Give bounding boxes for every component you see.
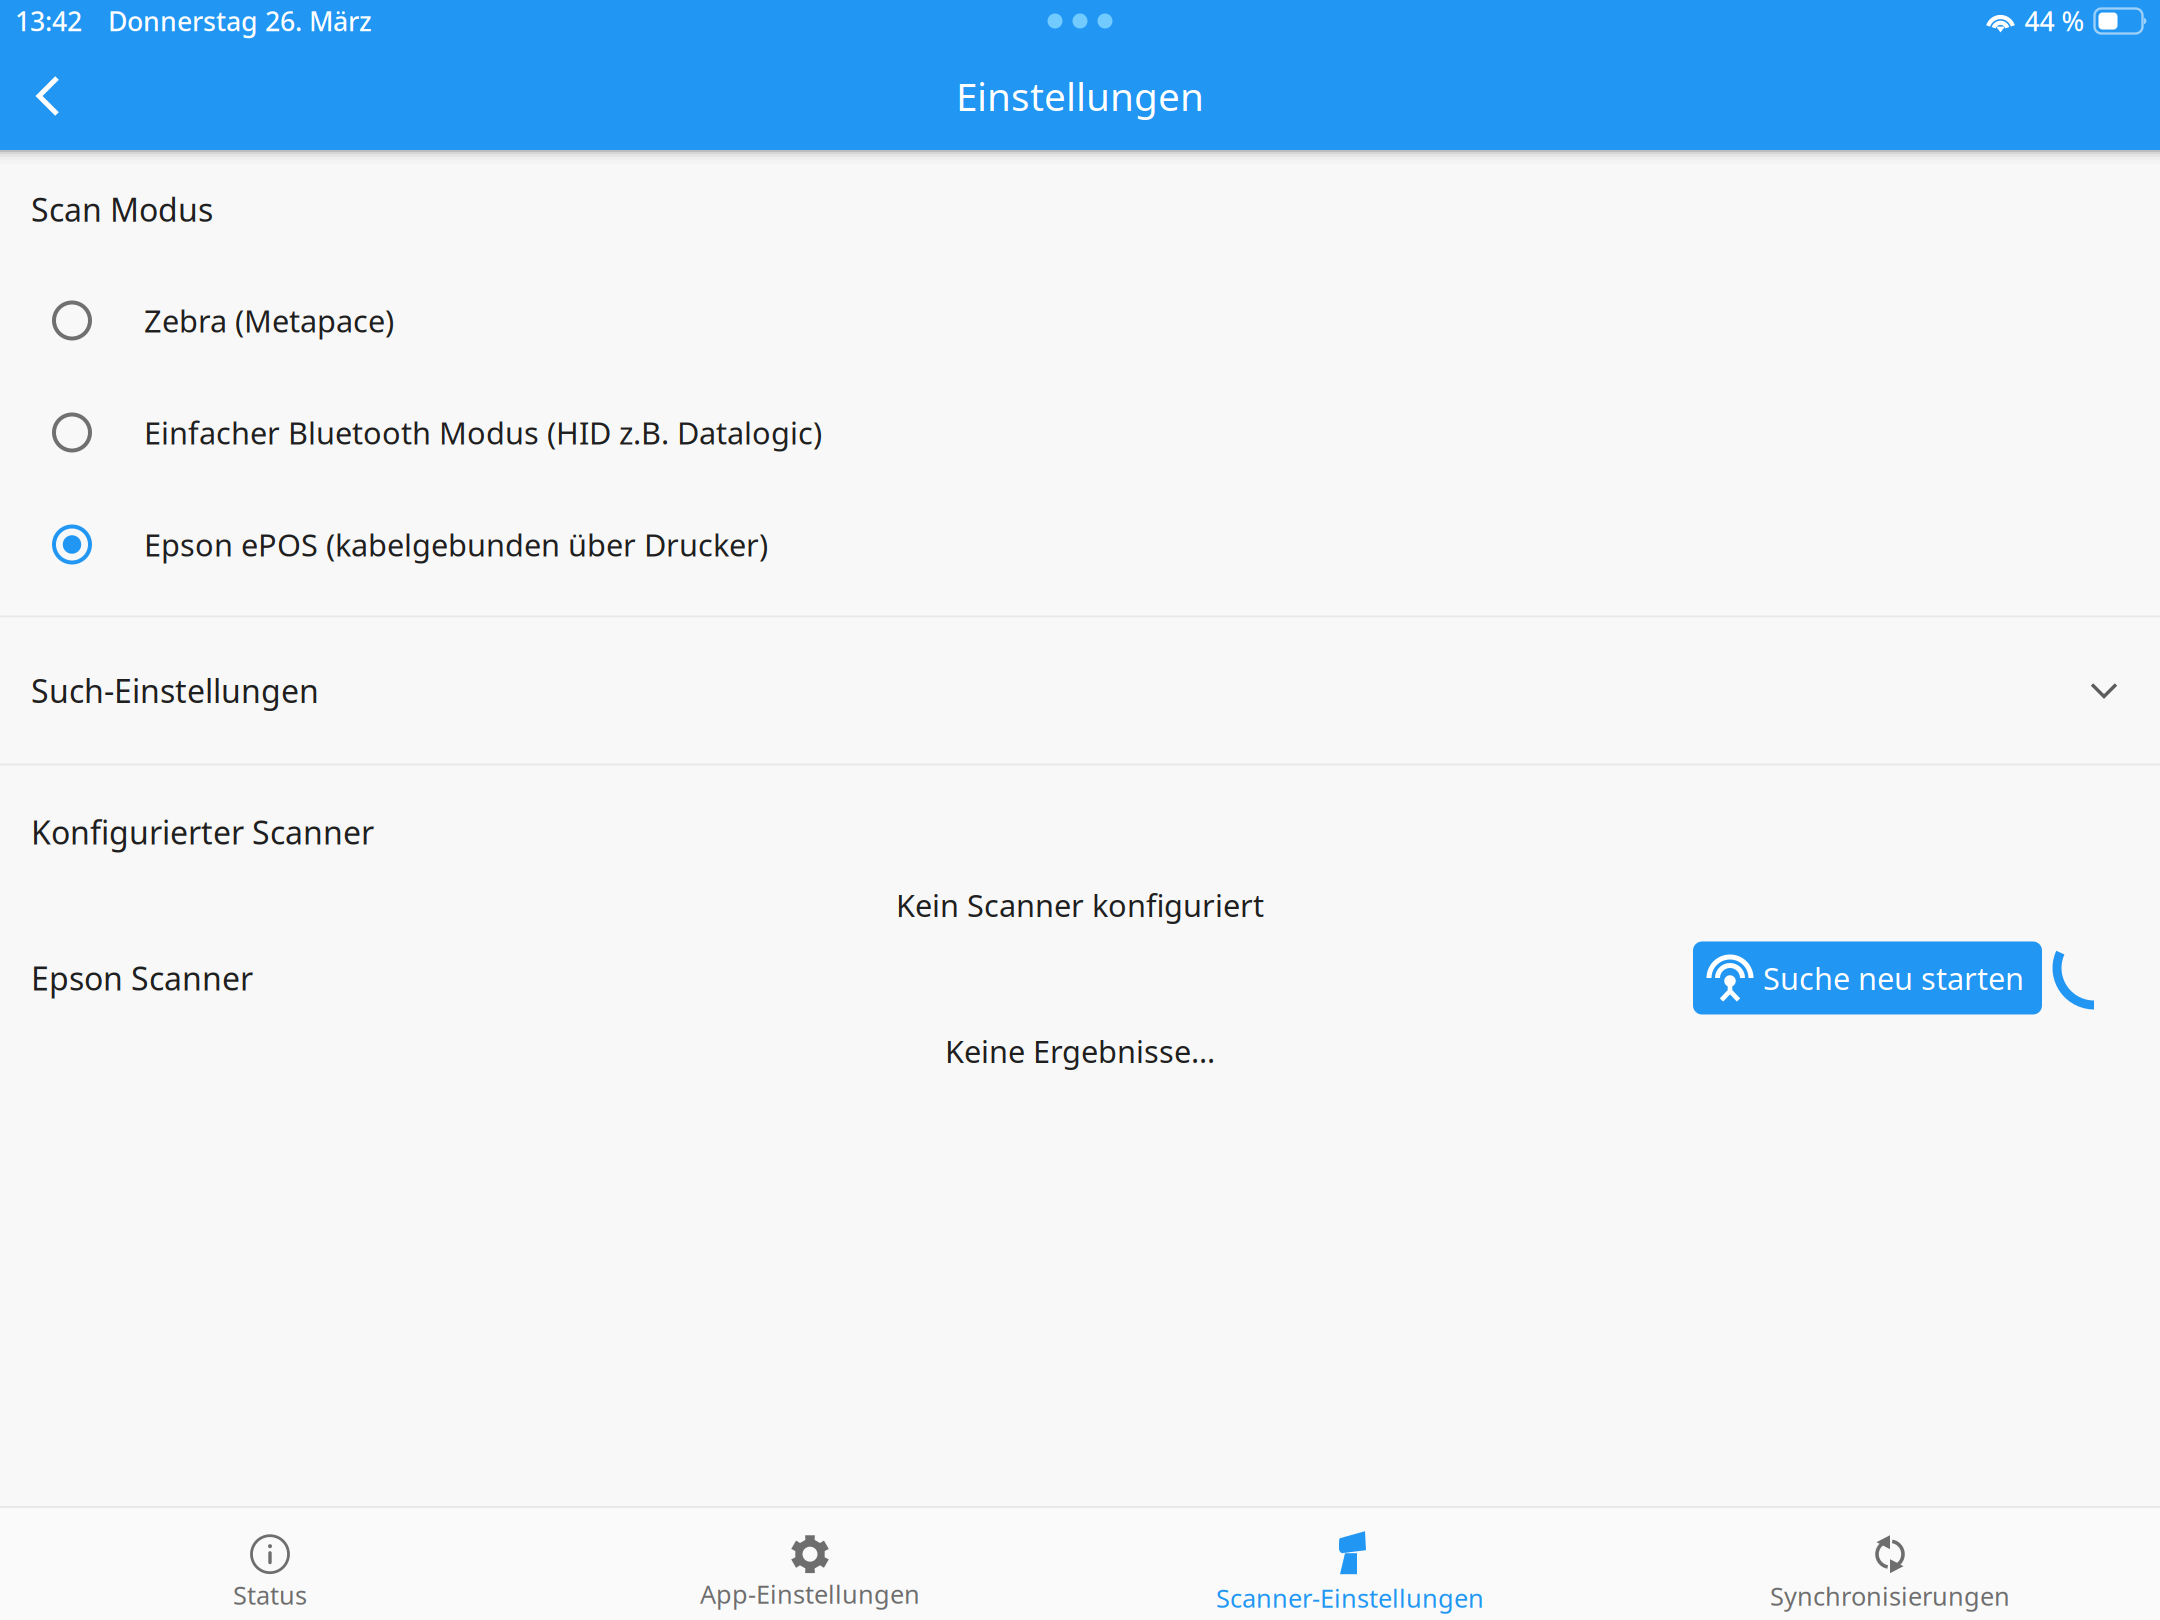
staticText: App-Einstellungen bbox=[700, 1577, 920, 1611]
staticText: Einfacher Bluetooth Modus (HID z.B. Data… bbox=[144, 412, 822, 453]
staticText: Epson Scanner bbox=[31, 957, 253, 999]
button[interactable]: Status bbox=[0, 1508, 540, 1620]
staticText: Status bbox=[233, 1578, 307, 1612]
staticText: 44 % bbox=[2024, 3, 2084, 39]
staticText: Kein Scanner konfiguriert bbox=[896, 885, 1264, 925]
staticText: Scanner-Einstellungen bbox=[1216, 1581, 1484, 1615]
staticText: Scan Modus bbox=[31, 188, 213, 230]
button[interactable]: Zebra (Metapace) bbox=[0, 264, 2160, 376]
button[interactable]: Suche neu starten bbox=[1693, 941, 2042, 1014]
button[interactable]: Epson ePOS (kabelgebunden über Drucker) bbox=[0, 488, 2160, 600]
staticText: Donnerstag 26. März bbox=[108, 3, 372, 39]
staticText: 13:42 bbox=[15, 3, 82, 39]
staticText: Einstellungen bbox=[956, 70, 1204, 122]
staticText: Epson ePOS (kabelgebunden über Drucker) bbox=[144, 524, 768, 565]
button[interactable]: Such-Einstellungen bbox=[0, 617, 2160, 763]
button[interactable]: Einfacher Bluetooth Modus (HID z.B. Data… bbox=[0, 376, 2160, 488]
button[interactable]: App-Einstellungen bbox=[540, 1508, 1080, 1620]
staticText: Suche neu starten bbox=[1763, 958, 2024, 998]
button[interactable]: Zurück bbox=[8, 56, 88, 136]
staticText: Konfigurierter Scanner bbox=[31, 811, 374, 853]
button[interactable]: Scanner-Einstellungen bbox=[1080, 1508, 1620, 1620]
staticText: Keine Ergebnisse... bbox=[945, 1031, 1215, 1071]
staticText: Such-Einstellungen bbox=[31, 669, 319, 712]
staticText: Synchronisierungen bbox=[1770, 1579, 2010, 1613]
staticText: Zebra (Metapace) bbox=[144, 300, 394, 341]
button[interactable]: Synchronisierungen bbox=[1620, 1508, 2160, 1620]
